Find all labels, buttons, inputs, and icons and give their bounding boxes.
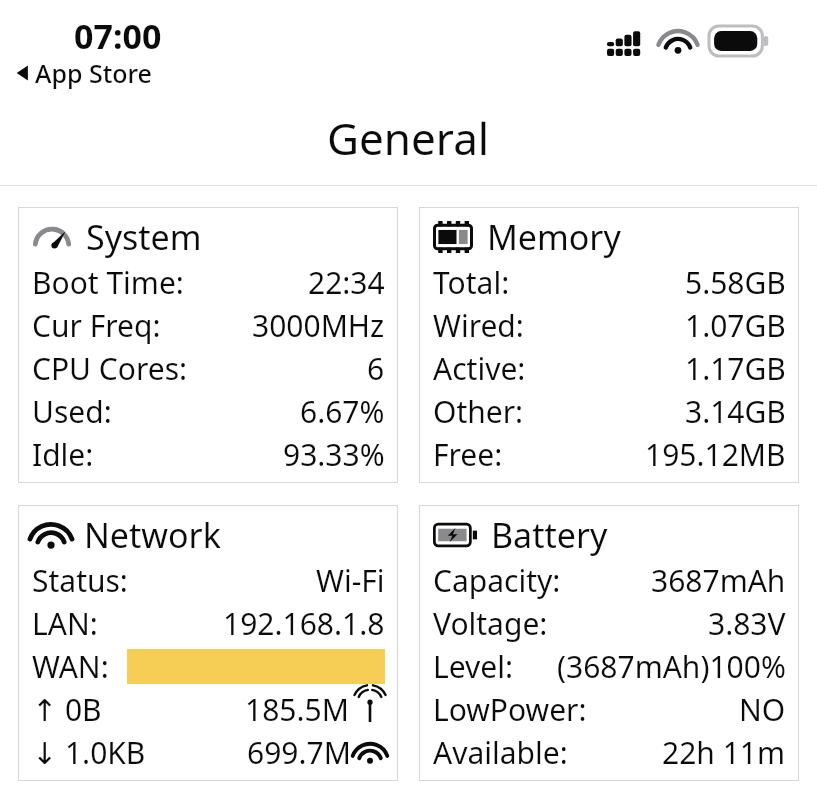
staticText: Used: — [32, 391, 112, 432]
staticText: ↑ 0B — [32, 689, 102, 730]
staticText: System — [86, 214, 202, 260]
staticText: 1.07GB — [685, 305, 786, 346]
staticText: Other: — [433, 391, 524, 432]
staticText: 699.7M — [247, 732, 351, 773]
staticText: 3.14GB — [685, 391, 786, 432]
button[interactable]: Battery — [419, 505, 799, 781]
staticText: Total: — [433, 262, 510, 303]
staticText: ↓ 1.0KB — [32, 732, 146, 773]
staticText: 3000MHz — [252, 305, 385, 346]
staticText: Memory — [487, 214, 621, 260]
button[interactable]: System — [18, 207, 398, 483]
staticText: 192.168.1.8 — [223, 603, 385, 644]
staticText: 185.5M — [245, 689, 349, 730]
staticText: NO — [739, 689, 786, 730]
staticText: Level: — [433, 646, 513, 687]
staticText: WAN: — [32, 646, 109, 687]
staticText: Available: — [433, 732, 568, 773]
staticText: 6 — [367, 348, 385, 389]
staticText: LAN: — [32, 603, 98, 644]
staticText: Capacity: — [433, 560, 561, 601]
button[interactable]: Network — [18, 505, 398, 781]
staticText: LowPower: — [433, 689, 587, 730]
staticText: Wired: — [433, 305, 524, 346]
staticText: Boot Time: — [32, 262, 184, 303]
staticText: (3687mAh)100% — [557, 646, 786, 687]
button[interactable]: Memory — [419, 207, 799, 483]
staticText: Active: — [433, 348, 526, 389]
staticText: Wi-Fi — [316, 560, 385, 601]
staticText: 22:34 — [308, 262, 385, 303]
staticText: 3687mAh — [651, 560, 786, 601]
staticText: 6.67% — [300, 391, 385, 432]
staticText: 22h 11m — [662, 732, 786, 773]
staticText: Battery — [491, 512, 608, 558]
staticText: Free: — [433, 434, 503, 475]
staticText: 07:00 — [74, 13, 162, 59]
staticText: 1.17GB — [685, 348, 786, 389]
staticText: Status: — [32, 560, 128, 601]
staticText: 93.33% — [283, 434, 385, 475]
staticText: Cur Freq: — [32, 305, 161, 346]
other: Battery — [433, 519, 477, 551]
other: System — [32, 221, 72, 253]
staticText: Network — [84, 512, 221, 558]
staticText: 5.58GB — [685, 262, 786, 303]
staticText: App Store — [35, 56, 152, 90]
staticText: General — [327, 108, 490, 168]
staticText: 3.83V — [708, 603, 786, 644]
staticText: Idle: — [32, 434, 94, 475]
staticText: CPU Cores: — [32, 348, 188, 389]
staticText: Voltage: — [433, 603, 548, 644]
other: Memory — [433, 221, 473, 253]
staticText: 195.12MB — [645, 434, 786, 475]
